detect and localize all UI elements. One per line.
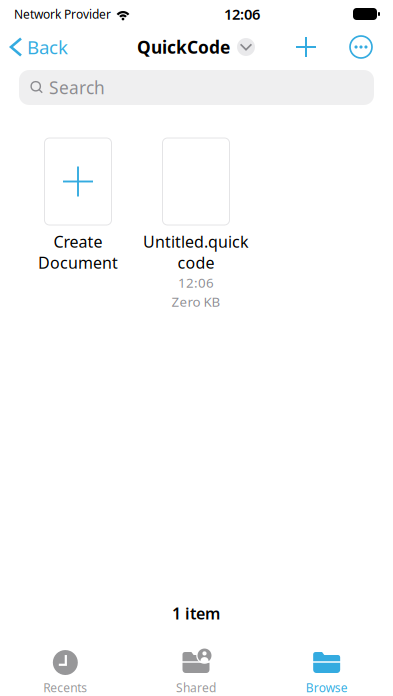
button[interactable]: Search [19,70,374,105]
staticText: 12:06 [224,4,260,24]
staticText: Zero KB [171,293,220,310]
button[interactable]: QuickCode [137,28,255,65]
staticText: Document [38,252,118,273]
staticText: Create [53,231,102,252]
staticText: Network Provider [14,6,111,22]
staticText: Browse [306,679,348,695]
staticText: Shared [176,679,216,695]
button[interactable]: Untitled.quick [137,138,255,354]
button[interactable]: New document [282,29,330,65]
button[interactable]: Browse [261,649,392,695]
staticText: Search [49,76,105,99]
staticText: code [177,252,214,273]
staticText: 1 item [172,603,220,624]
button[interactable]: More [330,29,392,65]
button[interactable]: Back [0,28,76,66]
button[interactable]: Create [19,138,137,354]
staticText: Untitled.quick [143,231,249,252]
staticText: Back [27,35,68,59]
button[interactable]: Shared [131,649,261,695]
staticText: Recents [43,679,87,695]
staticText: 12:06 [178,274,214,291]
button[interactable]: Recents [0,649,131,695]
staticText: QuickCode [137,35,230,58]
